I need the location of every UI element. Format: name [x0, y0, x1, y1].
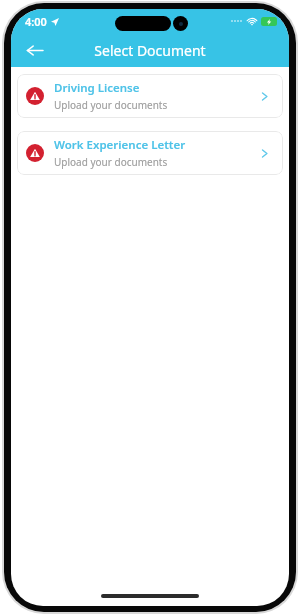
other: Open Driving License — [254, 86, 274, 106]
other: Open Work Experience Letter — [254, 143, 274, 163]
staticText: Upload your documents — [54, 155, 168, 169]
staticText: Driving License — [54, 80, 140, 96]
staticText: Upload your documents — [54, 98, 168, 112]
staticText: 4:00 — [25, 14, 47, 29]
staticText: Work Experience Letter — [54, 137, 186, 153]
button[interactable]: Work Experience Letter — [17, 131, 283, 175]
button[interactable]: Driving License — [17, 74, 283, 118]
button[interactable]: Back — [19, 35, 49, 65]
staticText: Select Document — [94, 41, 206, 60]
